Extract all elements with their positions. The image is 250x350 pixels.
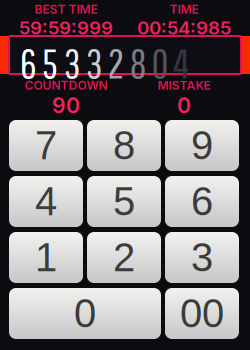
button[interactable]: 9 — [165, 120, 239, 171]
staticText: 7 — [35, 123, 57, 168]
button[interactable]: 7 — [9, 120, 83, 171]
staticText: 6 — [20, 39, 37, 87]
button[interactable]: 8 — [87, 120, 161, 171]
staticText: 4 — [173, 39, 189, 87]
staticText: 6 — [191, 179, 213, 224]
staticText: 8 — [113, 123, 135, 168]
staticText: MISTAKE — [157, 78, 210, 92]
button[interactable]: 2 — [87, 232, 161, 283]
staticText: 0 — [177, 92, 191, 118]
staticText: 9 — [191, 123, 213, 168]
button[interactable]: 3 — [165, 232, 239, 283]
button[interactable]: 5 — [87, 176, 161, 227]
staticText: TIME — [169, 2, 198, 16]
staticText: 90 — [52, 92, 80, 118]
staticText: 1 — [35, 235, 57, 280]
staticText: 3 — [86, 39, 103, 87]
staticText: 3 — [191, 235, 213, 280]
button[interactable]: 6 — [165, 176, 239, 227]
staticText: 8 — [129, 39, 146, 87]
staticText: 00 — [180, 291, 224, 336]
staticText: 5 — [42, 39, 58, 87]
staticText: 2 — [108, 39, 125, 87]
staticText: 4 — [35, 179, 57, 224]
button[interactable]: 1 — [9, 232, 83, 283]
staticText: BEST TIME — [34, 2, 97, 16]
staticText: 5 — [113, 179, 135, 224]
staticText: 0 — [151, 39, 168, 87]
button[interactable]: 4 — [9, 176, 83, 227]
staticText: 00:54:985 — [137, 16, 231, 39]
button[interactable]: 00 — [165, 288, 239, 339]
staticText: 59:59:999 — [19, 16, 113, 39]
staticText: 2 — [113, 235, 135, 280]
staticText: 0 — [74, 291, 96, 336]
button[interactable]: 0 — [9, 288, 161, 339]
staticText: COUNTDOWN — [24, 78, 107, 92]
staticText: 3 — [64, 39, 81, 87]
